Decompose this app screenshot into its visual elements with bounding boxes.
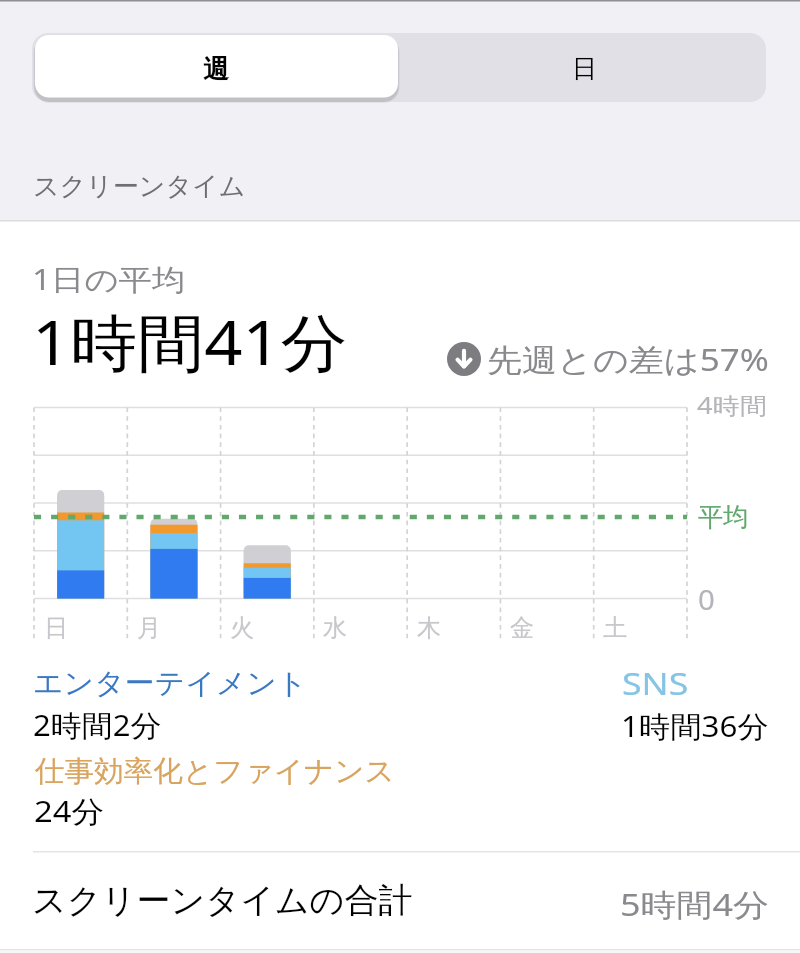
staticText: 2時間2分 — [33, 705, 162, 745]
staticText: 木 — [417, 613, 441, 643]
staticText: 火 — [230, 613, 254, 643]
staticText: スクリーンタイム — [33, 170, 246, 203]
staticText: 先週との差は57% — [487, 338, 769, 380]
staticText: 水 — [323, 613, 347, 643]
staticText: 0 — [698, 580, 716, 618]
staticText: 1時間41分 — [32, 299, 348, 384]
staticText: 1日の平均 — [32, 259, 186, 299]
button[interactable]: 週 — [32, 33, 399, 102]
staticText: 平均 — [698, 501, 748, 534]
staticText: SNS — [622, 662, 689, 704]
button[interactable]: スクリーンタイムの合計 — [0, 853, 800, 949]
staticText: 週 — [203, 53, 229, 86]
staticText: 金 — [510, 613, 534, 643]
staticText: 日 — [44, 613, 68, 643]
staticText: エンターテイメント — [33, 665, 308, 702]
staticText: 4時間 — [697, 389, 768, 420]
staticText: 24分 — [34, 791, 105, 831]
staticText: 5時間4分 — [620, 883, 770, 925]
staticText: 土 — [603, 613, 627, 643]
staticText: 1時間36分 — [621, 706, 769, 746]
staticText: 月 — [137, 613, 161, 643]
staticText: 仕事効率化とファイナンス — [35, 753, 395, 790]
other: 先週との差は減少 — [447, 342, 481, 376]
staticText: 日 — [572, 53, 597, 84]
staticText: スクリーンタイムの合計 — [32, 879, 413, 922]
button[interactable]: 日 — [399, 33, 766, 102]
